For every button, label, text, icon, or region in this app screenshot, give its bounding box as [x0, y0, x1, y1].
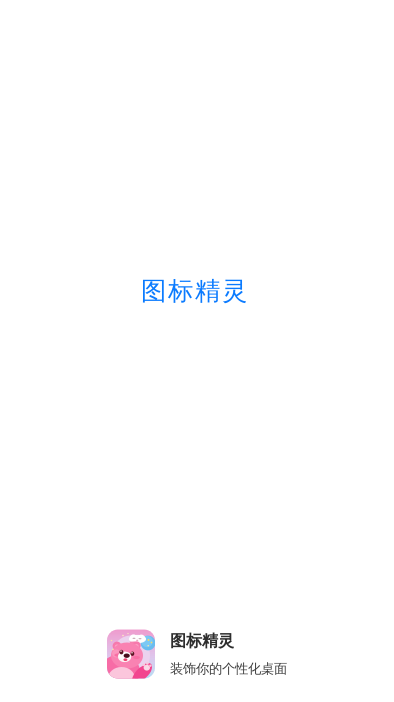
staticText: 图标精灵 [170, 631, 234, 651]
staticText: 装饰你的个性化桌面 [170, 661, 287, 677]
staticText: 图标精灵 [141, 275, 247, 306]
button[interactable]: 图标精灵 — 装饰你的个性化桌面 [107, 629, 307, 678]
